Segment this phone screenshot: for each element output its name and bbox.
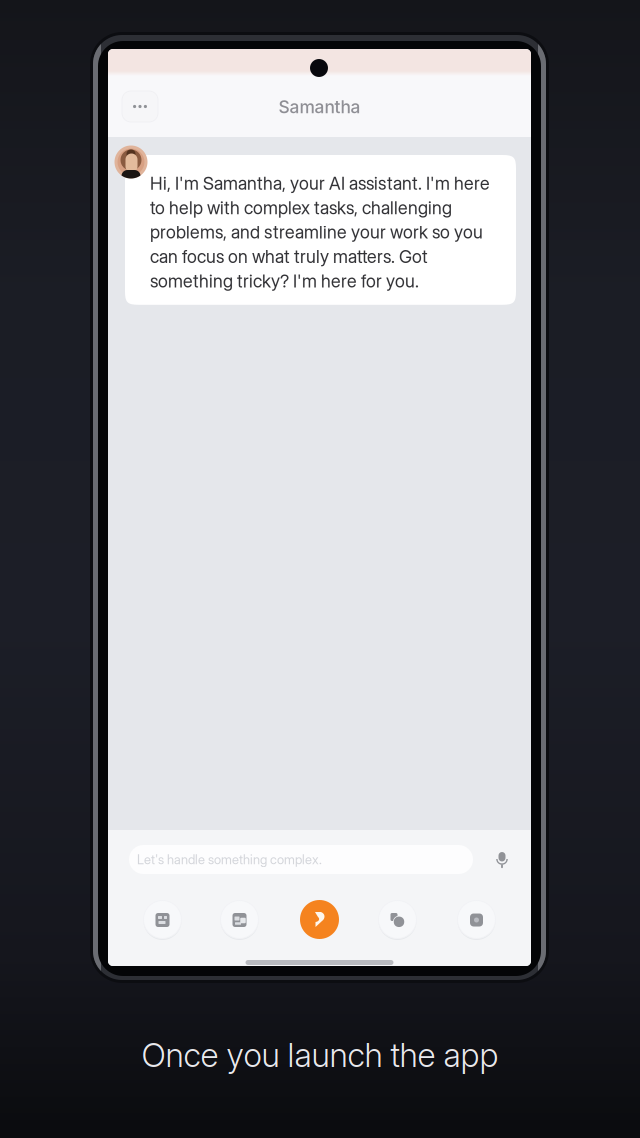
button[interactable]: Send (300, 900, 339, 939)
button[interactable]: Files (378, 900, 417, 939)
button[interactable]: More options (122, 91, 158, 122)
staticText: Once you launch the app (141, 1035, 498, 1075)
button[interactable]: Library (143, 900, 182, 939)
button[interactable]: Camera (457, 900, 496, 939)
button[interactable]: Notes (220, 900, 259, 939)
staticText: Samantha (278, 96, 360, 117)
button[interactable]: Voice input (494, 852, 510, 870)
staticText: Let's handle something complex. (137, 852, 322, 867)
button[interactable]: Let's handle something complex. (129, 845, 473, 874)
staticText: Hi, I'm Samantha, your AI assistant. I'm… (150, 172, 490, 292)
